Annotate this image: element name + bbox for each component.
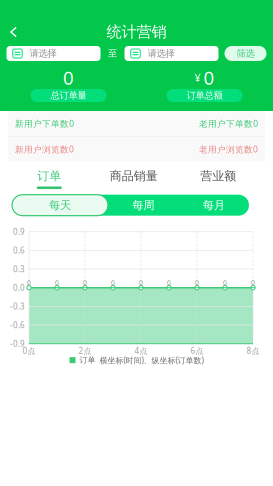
staticText: 8点 <box>246 345 259 356</box>
staticText: 0 <box>203 65 214 90</box>
staticText: 2点 <box>78 345 91 356</box>
staticText: 商品销量 <box>110 168 158 183</box>
button[interactable]: 请选择 <box>6 46 100 61</box>
staticText: 0 <box>27 278 31 287</box>
button[interactable]: 营业额 <box>176 166 260 192</box>
staticText: 老用户下单数0 <box>199 118 258 129</box>
staticText: 0 <box>223 278 227 287</box>
button[interactable]: 每月 <box>178 195 249 216</box>
staticText: -0.6 <box>10 320 25 330</box>
staticText: 0.6 <box>13 245 25 256</box>
staticText: ¥ <box>194 70 200 85</box>
button[interactable]: 请选择 <box>124 46 218 61</box>
staticText: 0点 <box>22 345 35 356</box>
staticText: 订单 <box>79 355 95 365</box>
staticText: 每周 <box>132 198 154 212</box>
staticText: 0 <box>83 278 87 287</box>
staticText: 0 <box>251 278 255 287</box>
staticText: 0 <box>111 278 115 287</box>
staticText: -0.3 <box>10 301 25 312</box>
staticText: 订单 <box>37 168 61 183</box>
button[interactable]: 每天 <box>12 195 108 216</box>
staticText: 每月 <box>203 198 225 212</box>
staticText: 0 <box>55 278 59 287</box>
staticText: 新用户下单数0 <box>15 118 74 129</box>
staticText: 新用户浏览数0 <box>15 143 74 155</box>
button[interactable]: 总订单量 <box>30 89 106 102</box>
button[interactable]: 筛选 <box>224 46 266 61</box>
button[interactable]: 每周 <box>108 195 178 216</box>
staticText: 0.0 <box>13 282 25 293</box>
button[interactable]: 商品销量 <box>91 166 176 192</box>
button[interactable]: Back <box>0 19 26 45</box>
staticText: 横坐标(时间)、纵坐标(订单数) <box>99 355 203 366</box>
staticText: 每天 <box>49 198 71 212</box>
staticText: 0 <box>195 278 199 287</box>
staticText: 订单总额 <box>186 90 222 101</box>
staticText: 请选择 <box>29 48 56 59</box>
staticText: 0.3 <box>13 264 25 274</box>
staticText: 营业额 <box>200 168 236 183</box>
staticText: 至 <box>108 48 117 59</box>
staticText: 请选择 <box>147 48 174 59</box>
button[interactable]: 订单总额 <box>166 89 242 102</box>
staticText: 统计营销 <box>106 22 166 42</box>
staticText: 0 <box>167 278 171 287</box>
staticText: 4点 <box>134 345 147 356</box>
button[interactable]: 订单 <box>7 166 91 192</box>
staticText: 总订单量 <box>50 90 86 101</box>
staticText: 0 <box>139 278 143 287</box>
staticText: 6点 <box>190 345 203 356</box>
staticText: 0 <box>63 65 74 90</box>
staticText: -0.9 <box>10 338 25 349</box>
staticText: 0.9 <box>13 226 25 237</box>
staticText: 老用户浏览数0 <box>199 143 258 155</box>
staticText: 筛选 <box>236 48 254 59</box>
